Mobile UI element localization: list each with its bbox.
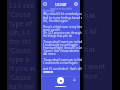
staticText: 'Cause	[9, 46, 31, 55]
button[interactable]: Search	[74, 2, 78, 6]
staticText: s all	[84, 27, 98, 37]
staticText: Oh, I-I	[9, 28, 30, 37]
button[interactable]: Profile picture	[43, 2, 47, 6]
staticText: 'Cause	[9, 73, 31, 82]
staticText: if you w	[9, 64, 36, 73]
staticText: type o	[9, 55, 30, 64]
button[interactable]: Send	[73, 78, 76, 81]
staticText: Why should I let somebody ruin my day An…	[43, 12, 82, 70]
button[interactable]: Record voice message	[57, 77, 64, 84]
staticText: tap here for info	[50, 7, 72, 11]
staticText: UCHAT	[55, 2, 67, 7]
staticText: sa'h lov	[9, 82, 34, 90]
staticText: 'Cause	[9, 10, 31, 19]
staticText: fore	[84, 72, 98, 82]
staticText: t want	[84, 62, 106, 72]
staticText: I-I-I see	[9, 1, 35, 10]
staticText: hat	[84, 45, 96, 55]
staticText: hat	[84, 11, 96, 21]
staticText: type of	[9, 19, 33, 28]
staticText: the thi	[9, 37, 31, 46]
staticText: Yesterday	[43, 9, 55, 13]
